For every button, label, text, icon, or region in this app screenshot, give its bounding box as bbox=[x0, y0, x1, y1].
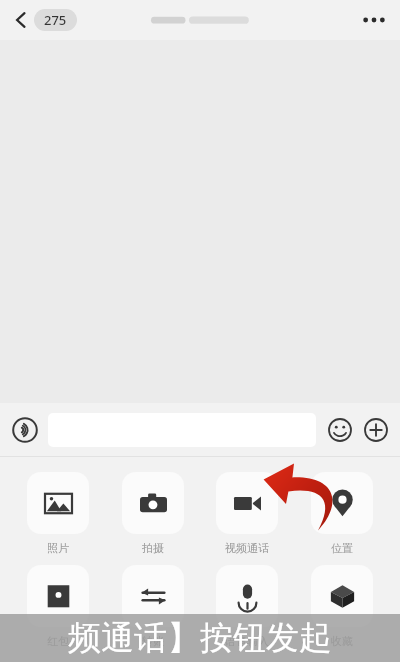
button[interactable]: Voice input bbox=[210, 565, 284, 648]
staticText: 照片 bbox=[47, 541, 69, 555]
staticText: 转账 bbox=[142, 634, 164, 648]
button[interactable]: More bbox=[362, 416, 390, 444]
staticText: 拍摄 bbox=[142, 541, 164, 555]
button[interactable]: More options bbox=[354, 2, 394, 38]
staticText: 275 bbox=[44, 11, 67, 29]
button[interactable]: Emoji bbox=[326, 416, 354, 444]
staticText: 红包 bbox=[47, 634, 69, 648]
staticText: 收藏 bbox=[331, 634, 353, 648]
staticText: 频通话】按钮发起 bbox=[68, 617, 332, 659]
staticText: 位置 bbox=[331, 541, 353, 555]
button[interactable]: Red packet bbox=[21, 565, 95, 648]
button[interactable]: Transfer bbox=[116, 565, 190, 648]
button[interactable]: Photos bbox=[21, 472, 95, 555]
button[interactable]: Video call bbox=[210, 472, 284, 555]
button[interactable]: Location bbox=[305, 472, 379, 555]
button[interactable]: Voice message bbox=[10, 415, 40, 445]
staticText: 语音输入 bbox=[225, 634, 269, 648]
staticText: 视频通话 bbox=[225, 541, 269, 555]
button[interactable]: Favorites bbox=[305, 565, 379, 648]
button[interactable]: Camera bbox=[116, 472, 190, 555]
button[interactable]: Back, 275 unread bbox=[10, 5, 81, 35]
